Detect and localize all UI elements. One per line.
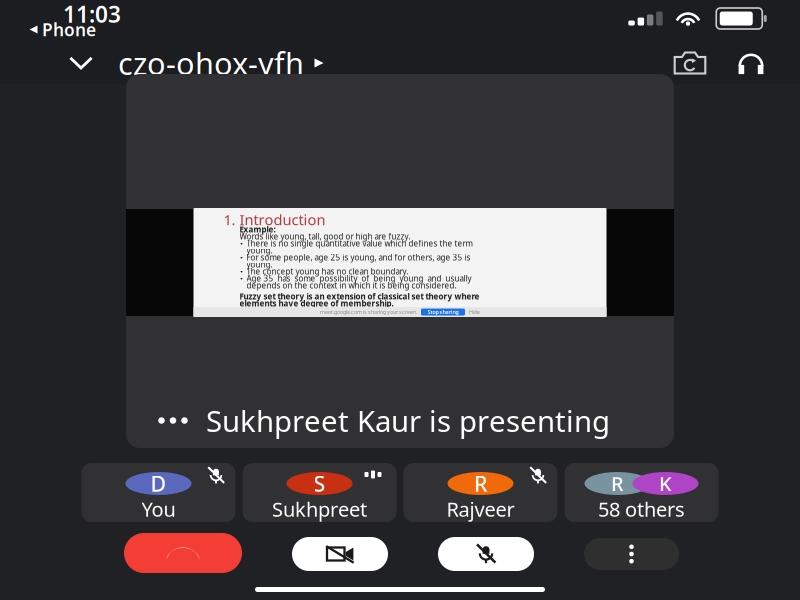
button[interactable]: R: [403, 463, 557, 522]
button[interactable]: More options: [584, 538, 679, 570]
staticText: Example:: [239, 224, 275, 235]
button[interactable]: Turn on camera: [292, 537, 388, 571]
button[interactable]: Switch camera: [660, 42, 720, 84]
staticText: K: [659, 470, 672, 497]
staticText: Phone: [42, 18, 96, 41]
staticText: Sukhpreet Kaur is presenting: [206, 401, 610, 440]
staticText: young.: [246, 245, 272, 256]
staticText: Words like young, tall, good or high are…: [239, 231, 410, 242]
staticText: There is no single quantitative value wh…: [246, 238, 472, 249]
staticText: elements have degree of membership.: [239, 298, 393, 309]
staticText: S: [313, 469, 325, 498]
staticText: young.: [246, 259, 272, 270]
staticText: For some people, age 25 is young, and fo…: [246, 252, 470, 263]
button[interactable]: Unmute microphone: [438, 537, 534, 571]
staticText: •: [240, 273, 243, 284]
button[interactable]: S: [242, 463, 396, 522]
button[interactable]: czo-ohox-yfh: [118, 42, 324, 84]
staticText: czo-ohox-yfh: [118, 43, 304, 83]
staticText: Rajveer: [446, 496, 514, 522]
button[interactable]: R: [564, 463, 718, 522]
staticText: 1. Introduction: [223, 210, 325, 229]
staticText: 11:03: [63, 0, 121, 29]
button[interactable]: Minimise call: [44, 42, 118, 84]
staticText: 58 others: [598, 496, 685, 522]
button[interactable]: Leave call: [124, 533, 242, 573]
staticText: •: [240, 266, 243, 277]
staticText: •: [240, 252, 243, 263]
staticText: Stop sharing: [427, 308, 458, 316]
staticText: Age 35 has some possibility of being you…: [246, 273, 471, 284]
button[interactable]: Audio output: [720, 42, 782, 84]
staticText: R: [474, 469, 487, 498]
staticText: R: [611, 470, 624, 497]
staticText: The concept young has no clean boundary.: [246, 266, 408, 277]
staticText: •: [240, 238, 243, 249]
button[interactable]: D: [81, 463, 235, 522]
staticText: Sukhpreet: [272, 496, 367, 522]
staticText: depends on the context in which it is be…: [246, 280, 456, 291]
staticText: Fuzzy set theory is an extension of clas…: [239, 291, 479, 302]
staticText: Hide: [469, 308, 480, 316]
staticText: You: [141, 496, 175, 522]
staticText: D: [150, 469, 166, 498]
staticText: meet.google.com is sharing your screen.: [320, 308, 417, 316]
